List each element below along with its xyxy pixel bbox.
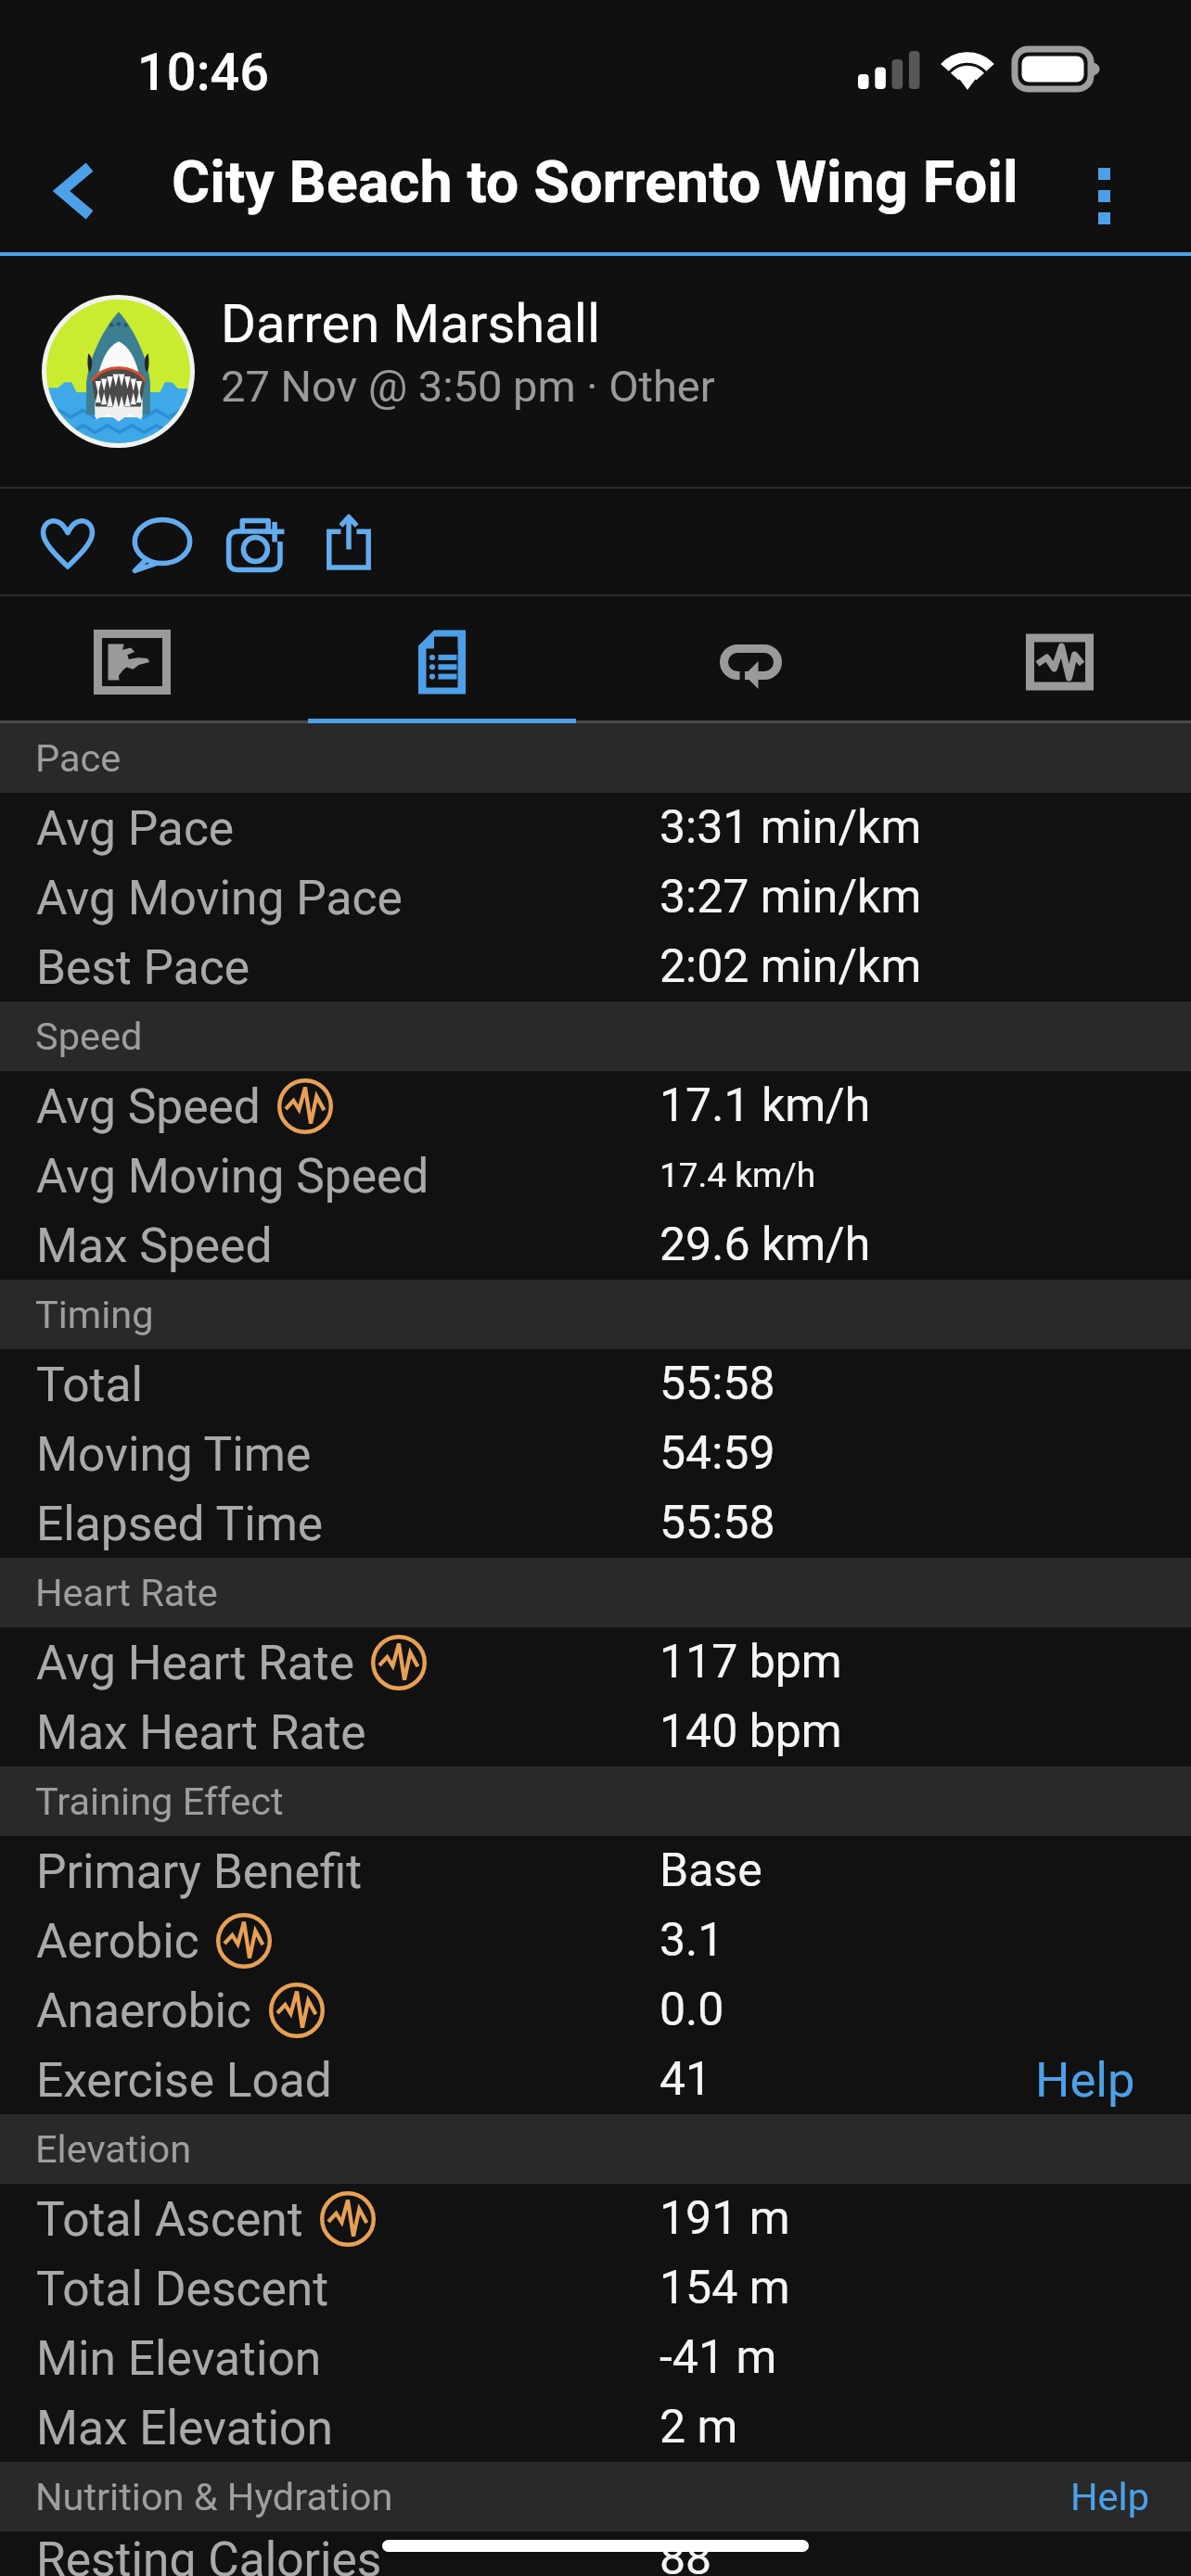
button[interactable]: Primary Benefit bbox=[0, 1836, 1191, 1906]
staticText: Speed bbox=[35, 1014, 143, 1059]
staticText: 2 m bbox=[660, 2400, 738, 2455]
staticText: Total bbox=[36, 1357, 143, 1412]
staticText: 88 bbox=[660, 2531, 712, 2576]
staticText: 154 m bbox=[660, 2261, 790, 2315]
button[interactable]: Details bbox=[288, 596, 596, 723]
staticText: Pace bbox=[35, 735, 122, 781]
button[interactable]: Total Descent bbox=[0, 2253, 1191, 2323]
staticText: 55:58 bbox=[660, 1357, 775, 1411]
staticText: 140 bpm bbox=[660, 1704, 842, 1759]
staticText: 17.1 km/h bbox=[660, 1078, 871, 1133]
staticText: Total Descent bbox=[36, 2261, 329, 2316]
button[interactable]: Avg Speed bbox=[0, 1071, 1191, 1141]
staticText: Avg Pace bbox=[36, 800, 235, 856]
staticText: 0.0 bbox=[660, 1983, 724, 2037]
button[interactable]: Avg Heart Rate bbox=[0, 1627, 1191, 1697]
staticText: Elapsed Time bbox=[36, 1496, 324, 1551]
button[interactable]: Anaerobic bbox=[0, 1975, 1191, 2045]
staticText: Aerobic bbox=[36, 1913, 199, 1969]
staticText: 3:31 min/km bbox=[660, 800, 922, 855]
button[interactable]: Moving Time bbox=[0, 1419, 1191, 1488]
staticText: Avg Heart Rate bbox=[36, 1635, 354, 1690]
staticText: 27 Nov @ 3:50 pm · Other bbox=[221, 361, 715, 412]
staticText: Elevation bbox=[35, 2126, 192, 2172]
button[interactable]: Avg Moving Pace bbox=[0, 862, 1191, 932]
button[interactable]: Aerobic bbox=[0, 1906, 1191, 1975]
staticText: Best Pace bbox=[36, 939, 250, 995]
button[interactable]: Help bbox=[1035, 2051, 1191, 2109]
staticText: Base bbox=[660, 1843, 762, 1898]
staticText: Heart Rate bbox=[35, 1570, 218, 1615]
staticText: 117 bpm bbox=[660, 1635, 842, 1690]
staticText: 41 bbox=[660, 2052, 712, 2107]
button[interactable]: Best Pace bbox=[0, 932, 1191, 1001]
button[interactable]: Min Elevation bbox=[0, 2323, 1191, 2392]
button[interactable]: Max Heart Rate bbox=[0, 1697, 1191, 1766]
staticText: Help bbox=[1035, 2051, 1135, 2109]
button[interactable]: Resting Calories bbox=[0, 2531, 1191, 2576]
button[interactable]: Total bbox=[0, 1349, 1191, 1419]
button[interactable]: Exercise Load bbox=[0, 2045, 1191, 2114]
staticText: Help bbox=[1070, 2474, 1150, 2519]
staticText: Anaerobic bbox=[36, 1983, 252, 2038]
staticText: 3:27 min/km bbox=[660, 870, 922, 925]
button[interactable]: Comment bbox=[115, 489, 210, 594]
button[interactable]: Add photo bbox=[210, 489, 304, 594]
button[interactable]: Elapsed Time bbox=[0, 1488, 1191, 1558]
staticText: Exercise Load bbox=[36, 2052, 332, 2108]
button[interactable]: Max Elevation bbox=[0, 2392, 1191, 2462]
staticText: Resting Calories bbox=[36, 2531, 382, 2576]
button[interactable]: Darren Marshall bbox=[0, 256, 1191, 487]
button[interactable]: Map bbox=[0, 596, 287, 723]
button[interactable]: Max Speed bbox=[0, 1210, 1191, 1280]
button[interactable]: Help bbox=[1070, 2474, 1191, 2519]
staticText: Min Elevation bbox=[36, 2330, 322, 2386]
staticText: 55:58 bbox=[660, 1496, 775, 1550]
staticText: Max Speed bbox=[36, 1218, 273, 1273]
button[interactable]: Total Ascent bbox=[0, 2184, 1191, 2253]
staticText: 17.4 km/h bbox=[660, 1155, 816, 1195]
button[interactable]: Back bbox=[0, 139, 130, 252]
staticText: Timing bbox=[35, 1292, 154, 1337]
staticText: Nutrition & Hydration bbox=[35, 2474, 393, 2519]
staticText: Avg Speed bbox=[36, 1078, 261, 1134]
staticText: Max Heart Rate bbox=[36, 1704, 366, 1760]
staticText: 3.1 bbox=[660, 1913, 724, 1968]
staticText: Max Elevation bbox=[36, 2400, 333, 2455]
staticText: Moving Time bbox=[36, 1426, 312, 1482]
staticText: -41 m bbox=[660, 2330, 777, 2385]
button[interactable]: More options bbox=[1018, 139, 1191, 252]
button[interactable]: Avg Pace bbox=[0, 793, 1191, 862]
staticText: 10:46 bbox=[137, 42, 270, 103]
button[interactable]: Share bbox=[301, 489, 396, 594]
staticText: Avg Moving Speed bbox=[36, 1148, 429, 1204]
staticText: Training Effect bbox=[35, 1779, 284, 1824]
button[interactable]: Like bbox=[20, 489, 115, 594]
staticText: Primary Benefit bbox=[36, 1843, 363, 1899]
button[interactable]: Avg Moving Speed bbox=[0, 1141, 1191, 1210]
staticText: 191 m bbox=[660, 2191, 790, 2246]
staticText: 29.6 km/h bbox=[660, 1218, 871, 1272]
staticText: 2:02 min/km bbox=[660, 939, 922, 994]
staticText: City Beach to Sorrento Wing Foil bbox=[172, 148, 1018, 217]
staticText: 54:59 bbox=[660, 1426, 775, 1481]
staticText: Avg Moving Pace bbox=[36, 870, 403, 925]
staticText: Darren Marshall bbox=[221, 292, 601, 355]
button[interactable]: Laps bbox=[596, 596, 905, 723]
staticText: Total Ascent bbox=[36, 2191, 303, 2247]
button[interactable]: Charts bbox=[905, 596, 1191, 723]
